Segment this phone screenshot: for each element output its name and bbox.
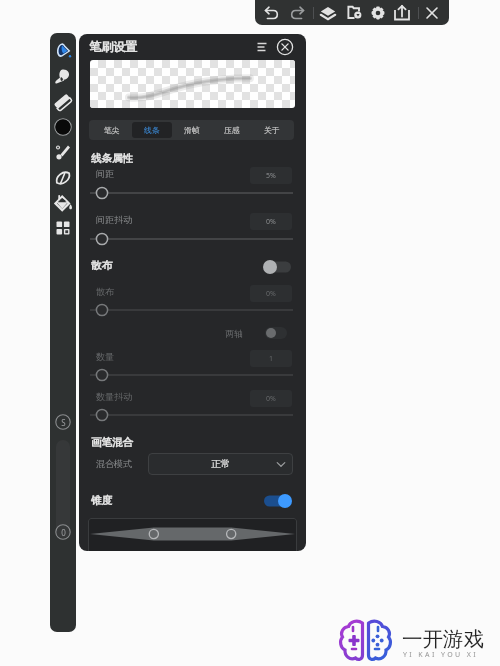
staticText: 数量抖动 [96,391,132,402]
button[interactable]: 笔尖 [91,122,132,138]
button[interactable]: Color [51,115,75,139]
staticText: 0% [266,394,276,404]
button[interactable]: 0% [250,285,292,302]
button[interactable]: Slider [90,302,294,318]
staticText: 间距抖动 [96,214,132,225]
staticText: 一开游戏 [402,626,484,652]
staticText: 散布 [91,259,112,272]
staticText: 1 [269,354,274,364]
button[interactable]: 散布 [263,258,293,276]
button[interactable]: Brush size [53,412,73,432]
button[interactable]: Settings [367,2,389,24]
button[interactable]: 两轴 [265,327,287,339]
button[interactable]: Undo [261,2,283,24]
button[interactable]: 滑帧 [172,122,212,138]
button[interactable]: Menu [252,37,272,57]
staticText: 混合模式 [96,458,132,469]
button[interactable]: 线条 [132,122,172,138]
staticText: YI KAI YOU XI [403,650,479,660]
button[interactable]: Pen [51,39,75,63]
button[interactable]: Slider [90,231,294,247]
button[interactable]: Palette [51,216,75,240]
button[interactable]: Layers [317,2,339,24]
staticText: 两轴 [225,328,243,339]
button[interactable]: 锥度 [263,492,293,510]
staticText: 散布 [96,286,114,297]
staticText: 0% [266,217,276,227]
button[interactable]: Slider [90,407,294,423]
staticText: 间距 [96,168,114,179]
staticText: 0 [61,527,66,538]
button[interactable]: Export [391,2,413,24]
button[interactable]: Close [421,2,443,24]
staticText: 画笔混合 [91,436,133,449]
button[interactable]: Import image [344,2,366,24]
button[interactable]: Slider [90,185,294,201]
staticText: 数量 [96,351,114,362]
staticText: 线条属性 [91,152,133,165]
staticText: 线条 [144,125,160,135]
staticText: 笔尖 [104,125,120,135]
staticText: S [61,417,66,428]
button[interactable]: Slider [90,367,294,383]
staticText: 0% [266,289,276,299]
button[interactable]: 5% [250,167,292,184]
staticText: 锥度 [91,494,112,507]
staticText: 滑帧 [184,125,200,135]
button[interactable]: Eraser [51,90,75,114]
staticText: 关于 [264,125,280,135]
button[interactable]: 0% [250,213,292,230]
button[interactable]: Smudge [51,64,75,88]
staticText: 压感 [224,125,240,135]
button[interactable]: Fill [51,191,75,215]
staticText: 正常 [211,458,230,470]
button[interactable]: Close panel [275,37,295,57]
button[interactable]: 压感 [212,122,252,138]
staticText: 笔刷设置 [89,39,137,54]
staticText: 5% [266,171,276,181]
button[interactable]: Brush [51,140,75,164]
button[interactable]: Taper curve [88,518,297,551]
button[interactable]: Opacity [53,522,73,542]
button[interactable]: Redo [286,2,308,24]
button[interactable]: 0% [250,390,292,407]
button[interactable]: 正常 [148,453,293,475]
button[interactable]: Shape [51,166,75,190]
button[interactable]: 关于 [252,122,292,138]
